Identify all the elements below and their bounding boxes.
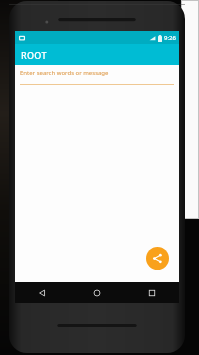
button[interactable]: Home: [69, 282, 124, 303]
button[interactable]: Share: [146, 247, 169, 270]
button[interactable]: ROOT: [15, 44, 179, 65]
staticText: ROOT: [21, 49, 47, 61]
staticText: 9:26: [164, 34, 176, 42]
button[interactable]: Recent apps: [124, 282, 179, 303]
staticText: Enter search words or message: [20, 69, 109, 77]
button[interactable]: Back: [15, 282, 69, 303]
button[interactable]: Enter search words or message: [15, 65, 179, 85]
